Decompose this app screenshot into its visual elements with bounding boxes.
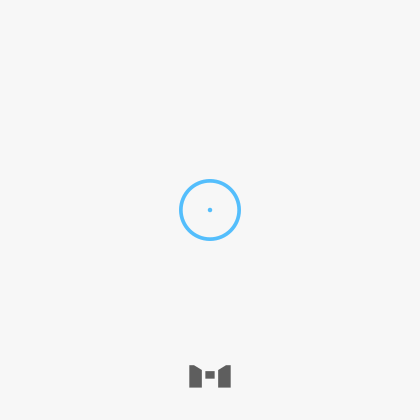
button[interactable]: Recenter on current location bbox=[179, 179, 241, 241]
button[interactable]: About this map bbox=[189, 365, 231, 388]
